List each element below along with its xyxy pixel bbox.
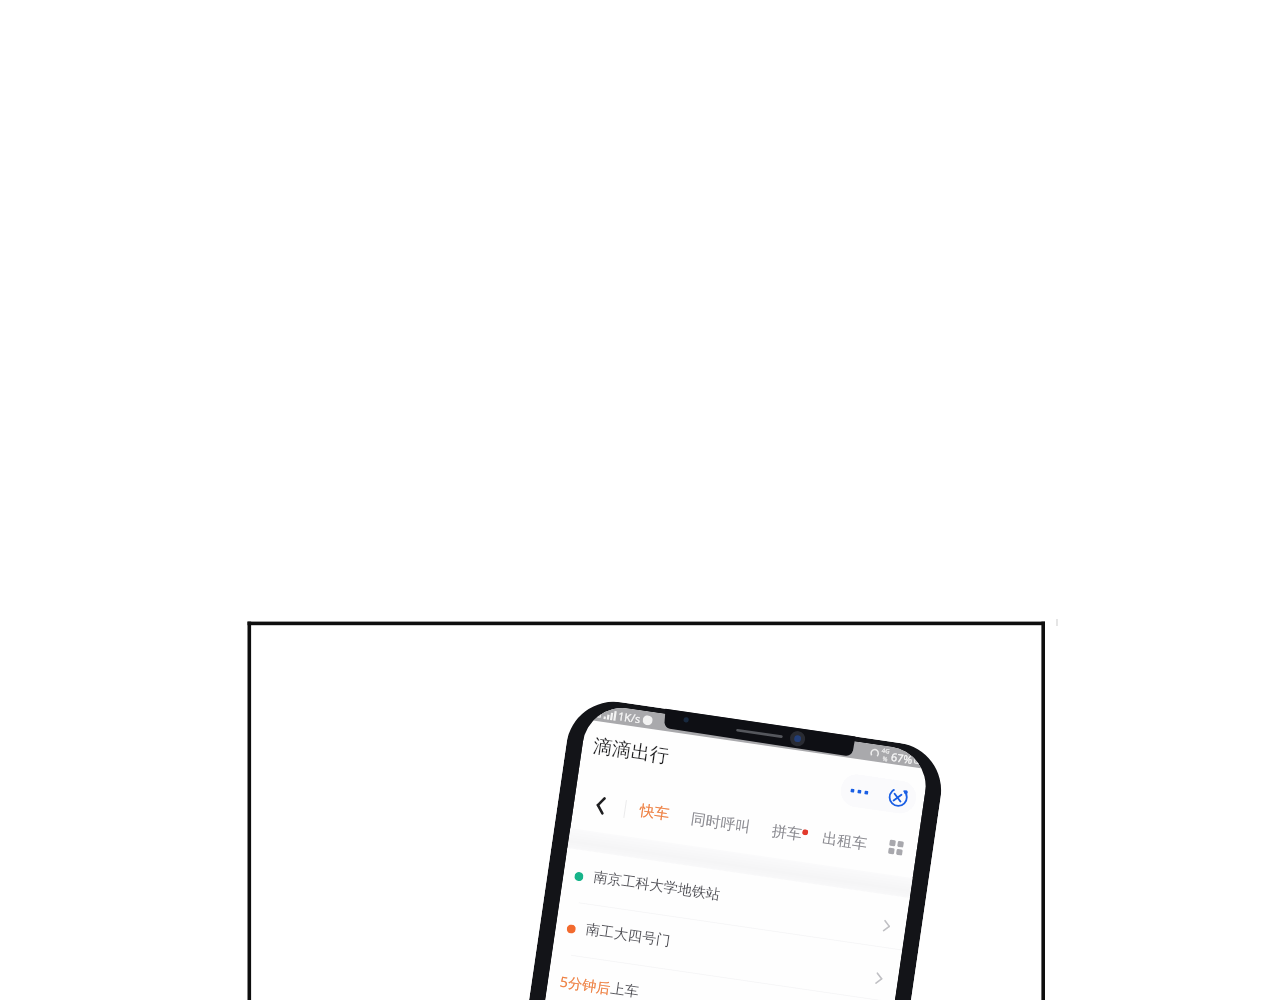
staticText: 1K/s	[617, 708, 642, 726]
staticText: 滴滴出行	[592, 734, 670, 769]
staticText: 67%	[890, 749, 914, 767]
staticText: 南工大四号门	[585, 920, 672, 950]
button[interactable]: 南工大四号门	[552, 900, 902, 1000]
staticText: 拼车	[771, 822, 803, 845]
button[interactable]: Back	[586, 792, 613, 819]
button[interactable]: Mini program menu	[838, 772, 918, 816]
button[interactable]: More services	[886, 837, 906, 858]
button[interactable]: 南京工科大学地铁站	[560, 848, 910, 949]
staticText: 4G	[881, 746, 890, 756]
staticText: 5分钟后	[559, 971, 612, 998]
staticText: 上车	[609, 979, 641, 1000]
staticText: %	[882, 755, 888, 763]
button[interactable]: 拼车	[771, 822, 809, 846]
button[interactable]: 出租车	[821, 829, 868, 854]
button[interactable]: 同时呼叫	[689, 810, 752, 837]
staticText: 4G	[589, 706, 603, 720]
staticText: 南京工科大学地铁站	[592, 867, 722, 904]
button[interactable]: 5分钟后	[545, 953, 894, 1000]
button[interactable]: 快车	[638, 801, 671, 824]
